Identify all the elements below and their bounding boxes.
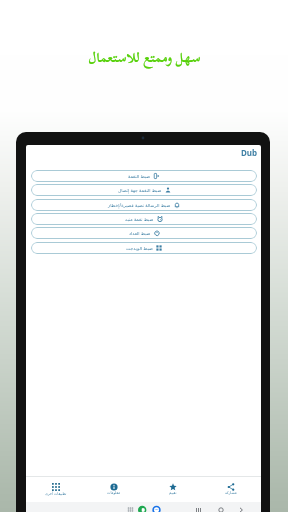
button[interactable]: Rate [144, 477, 202, 502]
staticText: ضبط نغمة منبه [125, 216, 154, 222]
staticText: ضبط العداد [129, 230, 151, 236]
staticText: سهل وممتع للاستعمال [88, 44, 201, 72]
button[interactable]: ضبط الويدجت [31, 242, 257, 254]
staticText: ضبط النغمة [128, 173, 151, 179]
staticText: ضبط النغمة جهة إتصال [118, 187, 162, 193]
button[interactable]: Share [202, 477, 260, 502]
staticText: Dub [241, 147, 258, 158]
staticText: ضبط الرسالة نصية قصيرة/إخطار [108, 202, 171, 208]
button[interactable]: Other apps [27, 477, 85, 502]
button[interactable]: ضبط الرسالة نصية قصيرة/إخطار [31, 199, 257, 211]
button[interactable]: ضبط النغمة جهة إتصال [31, 184, 257, 196]
staticText: تقييم [169, 491, 177, 495]
button[interactable]: ضبط العداد [31, 227, 257, 239]
staticText: مشاركة [225, 491, 237, 495]
staticText: ضبط الويدجت [126, 245, 153, 251]
button[interactable]: ضبط النغمة [31, 170, 257, 182]
staticText: تطبيقات أخرى [45, 491, 67, 496]
button[interactable]: ضبط نغمة منبه [31, 213, 257, 225]
staticText: معلومات [107, 491, 121, 495]
button[interactable]: Information [85, 477, 143, 502]
